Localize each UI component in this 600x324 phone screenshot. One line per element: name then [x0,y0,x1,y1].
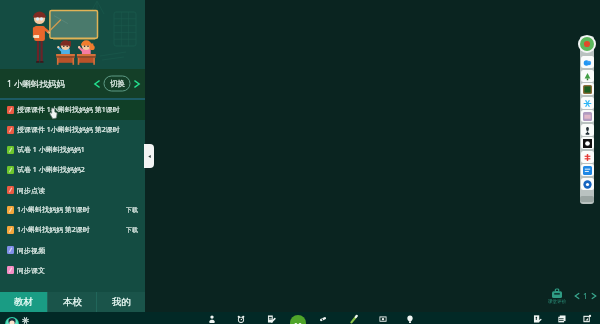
button[interactable]: Blackboard [581,83,594,95]
button[interactable]: Windows [556,313,568,324]
button[interactable]: Previous lesson [91,78,103,90]
button[interactable]: 教材 [0,292,47,312]
button[interactable]: Account [5,317,19,324]
button[interactable]: Collapse panel [144,144,154,168]
button[interactable]: Subtitle [581,164,594,176]
staticText: 试卷 1 小蝌蚪找妈妈1 [17,145,85,155]
button[interactable]: Cloud [581,56,594,68]
staticText: 1小蝌蚪找妈妈 第1课时 [17,205,90,215]
button[interactable]: Eraser [317,313,329,324]
staticText: 教材 [14,296,33,308]
staticText: 1 小蝌蚪找妈妈 [7,78,66,90]
button[interactable]: 切换 [104,76,130,91]
button[interactable]: Pen [348,313,360,324]
button[interactable]: Settings [581,178,594,190]
button[interactable]: 1小蝌蚪找妈妈 第2课时 [0,220,145,240]
staticText: 授课课件 1小蝌蚪找妈妈 第2课时 [17,125,120,135]
staticText: 我的 [112,296,131,308]
button[interactable]: Snowflake [581,97,594,109]
button[interactable]: 同步点读 [0,180,145,200]
staticText: 授课课件 1小蝌蚪找妈妈 第1课时 [17,105,120,115]
button[interactable]: 授课课件 1小蝌蚪找妈妈 第2课时 [0,120,145,140]
button[interactable]: Photo [581,110,594,122]
staticText: 下载 [126,226,138,234]
button[interactable]: Next page [589,291,599,301]
button[interactable]: Notes [265,313,277,324]
staticText: 1小蝌蚪找妈妈 第2课时 [17,225,90,235]
button[interactable]: 试卷 1 小蝌蚪找妈妈2 [0,160,145,180]
staticText: 同步点读 [17,186,45,195]
button[interactable]: 我的 [97,292,145,312]
button[interactable]: 本校 [48,292,96,312]
button[interactable]: Spotlight [404,313,416,324]
button[interactable]: Profile [206,313,218,324]
button[interactable]: Camera [581,137,594,149]
button[interactable]: 同步视频 [0,240,145,260]
staticText: 1 [583,291,588,299]
button[interactable]: Tree [581,70,594,82]
button[interactable]: Screenshot [377,313,389,324]
button[interactable]: Help [531,313,543,324]
button[interactable]: 试卷 1 小蝌蚪找妈妈1 [0,140,145,160]
staticText: 同步视频 [17,246,45,255]
button[interactable]: Microphone [581,124,594,136]
button[interactable]: Assistant [578,35,596,53]
button[interactable]: 课堂评价 [546,289,568,305]
staticText: 切换 [110,79,125,88]
button[interactable]: 同步课文 [0,260,145,280]
button[interactable]: 1小蝌蚪找妈妈 第1课时 [0,200,145,220]
button[interactable]: Class mode [290,315,306,324]
staticText: 下载 [126,206,138,214]
button[interactable]: Fullscreen [581,313,593,324]
staticText: 试卷 1 小蝌蚪找妈妈2 [17,165,85,175]
button[interactable]: Move toolbar [580,196,594,202]
staticText: 同步课文 [17,266,45,275]
button[interactable]: Previous page [572,291,582,301]
button[interactable]: Timer [235,313,247,324]
button[interactable]: 授课课件 1小蝌蚪找妈妈 第1课时 [0,100,145,120]
button[interactable]: Next lesson [131,78,143,90]
button[interactable]: Settings [21,316,30,324]
staticText: 本校 [63,296,82,308]
staticText: 课堂评价 [548,299,567,305]
button[interactable]: Dictionary [581,151,594,163]
